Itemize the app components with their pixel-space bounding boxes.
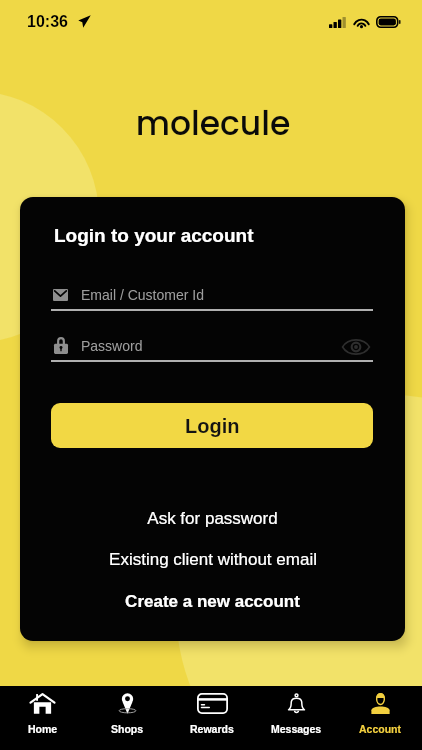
staticText: Account: [359, 723, 401, 735]
staticText: Ask for password: [147, 509, 278, 528]
staticText: molecule: [2, 100, 422, 146]
button[interactable]: Existing client without email: [20, 545, 405, 573]
staticText: Login to your account: [54, 225, 254, 246]
button[interactable]: Home: [0, 686, 85, 750]
button[interactable]: Ask for password: [20, 504, 405, 532]
button[interactable]: Account: [338, 686, 422, 750]
button[interactable]: Email / Customer Id: [51, 285, 373, 311]
button[interactable]: Password: [51, 336, 373, 362]
staticText: Existing client without email: [109, 550, 317, 569]
staticText: Rewards: [190, 723, 234, 735]
staticText: Messages: [271, 723, 322, 735]
staticText: Password: [81, 338, 143, 354]
staticText: 10:36: [27, 13, 68, 31]
button[interactable]: Show password: [341, 336, 371, 358]
staticText: Home: [28, 723, 58, 735]
staticText: Shops: [111, 723, 144, 735]
button[interactable]: Messages: [254, 686, 338, 750]
staticText: Create a new account: [125, 592, 300, 611]
staticText: Email / Customer Id: [81, 287, 204, 303]
button[interactable]: Login: [51, 403, 373, 448]
button[interactable]: Shops: [85, 686, 170, 750]
button[interactable]: Create a new account: [20, 587, 405, 615]
staticText: Login: [185, 415, 240, 437]
button[interactable]: Rewards: [170, 686, 254, 750]
